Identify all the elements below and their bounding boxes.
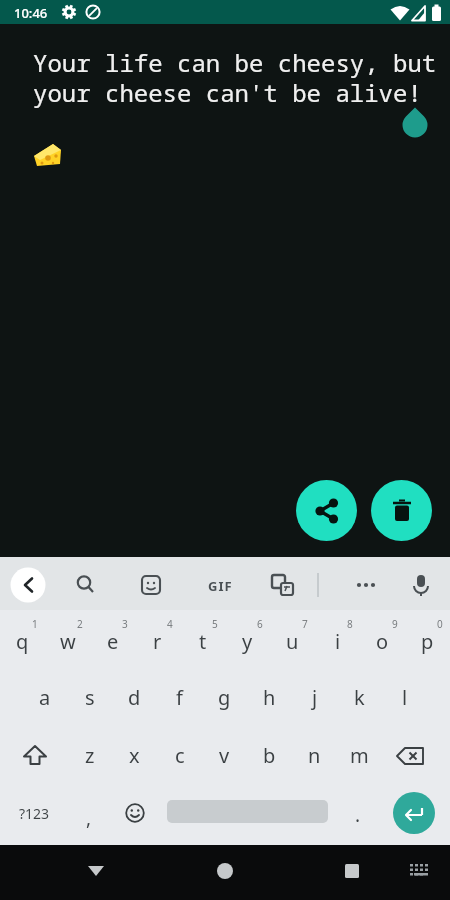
staticText: c (175, 742, 185, 769)
staticText: i (335, 628, 341, 655)
button[interactable]: n (292, 729, 337, 782)
button[interactable]: j (292, 671, 337, 724)
staticText: k (354, 684, 365, 711)
button[interactable] (395, 746, 427, 770)
staticText: , (86, 805, 92, 831)
button[interactable]: z (67, 729, 112, 782)
staticText: 6 (257, 617, 263, 631)
button[interactable]: o (360, 615, 405, 668)
button[interactable] (342, 861, 362, 881)
staticText: p (421, 628, 434, 655)
button[interactable] (20, 744, 50, 770)
button[interactable]: p (405, 615, 450, 668)
staticText: g (218, 684, 231, 711)
staticText: GIF (208, 577, 233, 595)
staticText: y (242, 628, 253, 655)
staticText: Your life can be cheesy, but your cheese… (33, 46, 437, 109)
staticText: u (286, 628, 299, 655)
button[interactable] (124, 802, 146, 824)
staticText: 5 (212, 617, 218, 631)
button[interactable]: b (247, 729, 292, 782)
button[interactable]: a (22, 671, 67, 724)
button[interactable]: v (202, 729, 247, 782)
staticText: q (16, 628, 29, 655)
staticText: n (308, 742, 321, 769)
button[interactable]: u (270, 615, 315, 668)
staticText: v (219, 742, 230, 769)
staticText: f (176, 684, 183, 711)
staticText: . (355, 802, 361, 828)
button[interactable]: r (135, 615, 180, 668)
button[interactable]: e (90, 615, 135, 668)
button[interactable]: ?123 (6, 787, 62, 840)
button[interactable] (408, 863, 432, 879)
staticText: 0 (437, 617, 443, 631)
button[interactable]: l (382, 671, 427, 724)
button[interactable]: q (0, 615, 45, 668)
staticText: d (128, 684, 141, 711)
button[interactable] (296, 480, 357, 541)
staticText: 8 (347, 617, 353, 631)
staticText: l (402, 684, 408, 711)
staticText: ?123 (19, 804, 50, 823)
staticText: 9 (392, 617, 398, 631)
button[interactable]: d (112, 671, 157, 724)
staticText: s (85, 684, 95, 711)
staticText: h (263, 684, 276, 711)
staticText: m (350, 742, 369, 769)
staticText: t (199, 628, 207, 655)
button[interactable]: k (337, 671, 382, 724)
staticText: 3 (122, 617, 128, 631)
button[interactable] (371, 480, 432, 541)
button[interactable]: f (157, 671, 202, 724)
staticText: w (60, 628, 76, 655)
button[interactable]: w (45, 615, 90, 668)
staticText: j (312, 684, 318, 711)
staticText: r (153, 628, 162, 655)
button[interactable] (393, 792, 435, 834)
staticText: 7 (302, 617, 308, 631)
staticText: a (39, 684, 51, 711)
button[interactable]: h (247, 671, 292, 724)
staticText: e (107, 628, 119, 655)
staticText: z (85, 742, 95, 769)
staticText: b (263, 742, 276, 769)
staticText: 1 (32, 617, 38, 631)
button[interactable]: s (67, 671, 112, 724)
staticText: x (129, 742, 140, 769)
button[interactable]: t (180, 615, 225, 668)
button[interactable]: g (202, 671, 247, 724)
staticText: 2 (77, 617, 83, 631)
staticText: o (376, 628, 389, 655)
staticText: 10:46 (14, 4, 48, 22)
staticText: 4 (167, 617, 173, 631)
button[interactable]: x (112, 729, 157, 782)
button[interactable]: y (225, 615, 270, 668)
button[interactable]: i (315, 615, 360, 668)
button[interactable]: c (157, 729, 202, 782)
button[interactable] (86, 861, 106, 881)
button[interactable]: m (337, 729, 382, 782)
button[interactable] (215, 861, 235, 881)
